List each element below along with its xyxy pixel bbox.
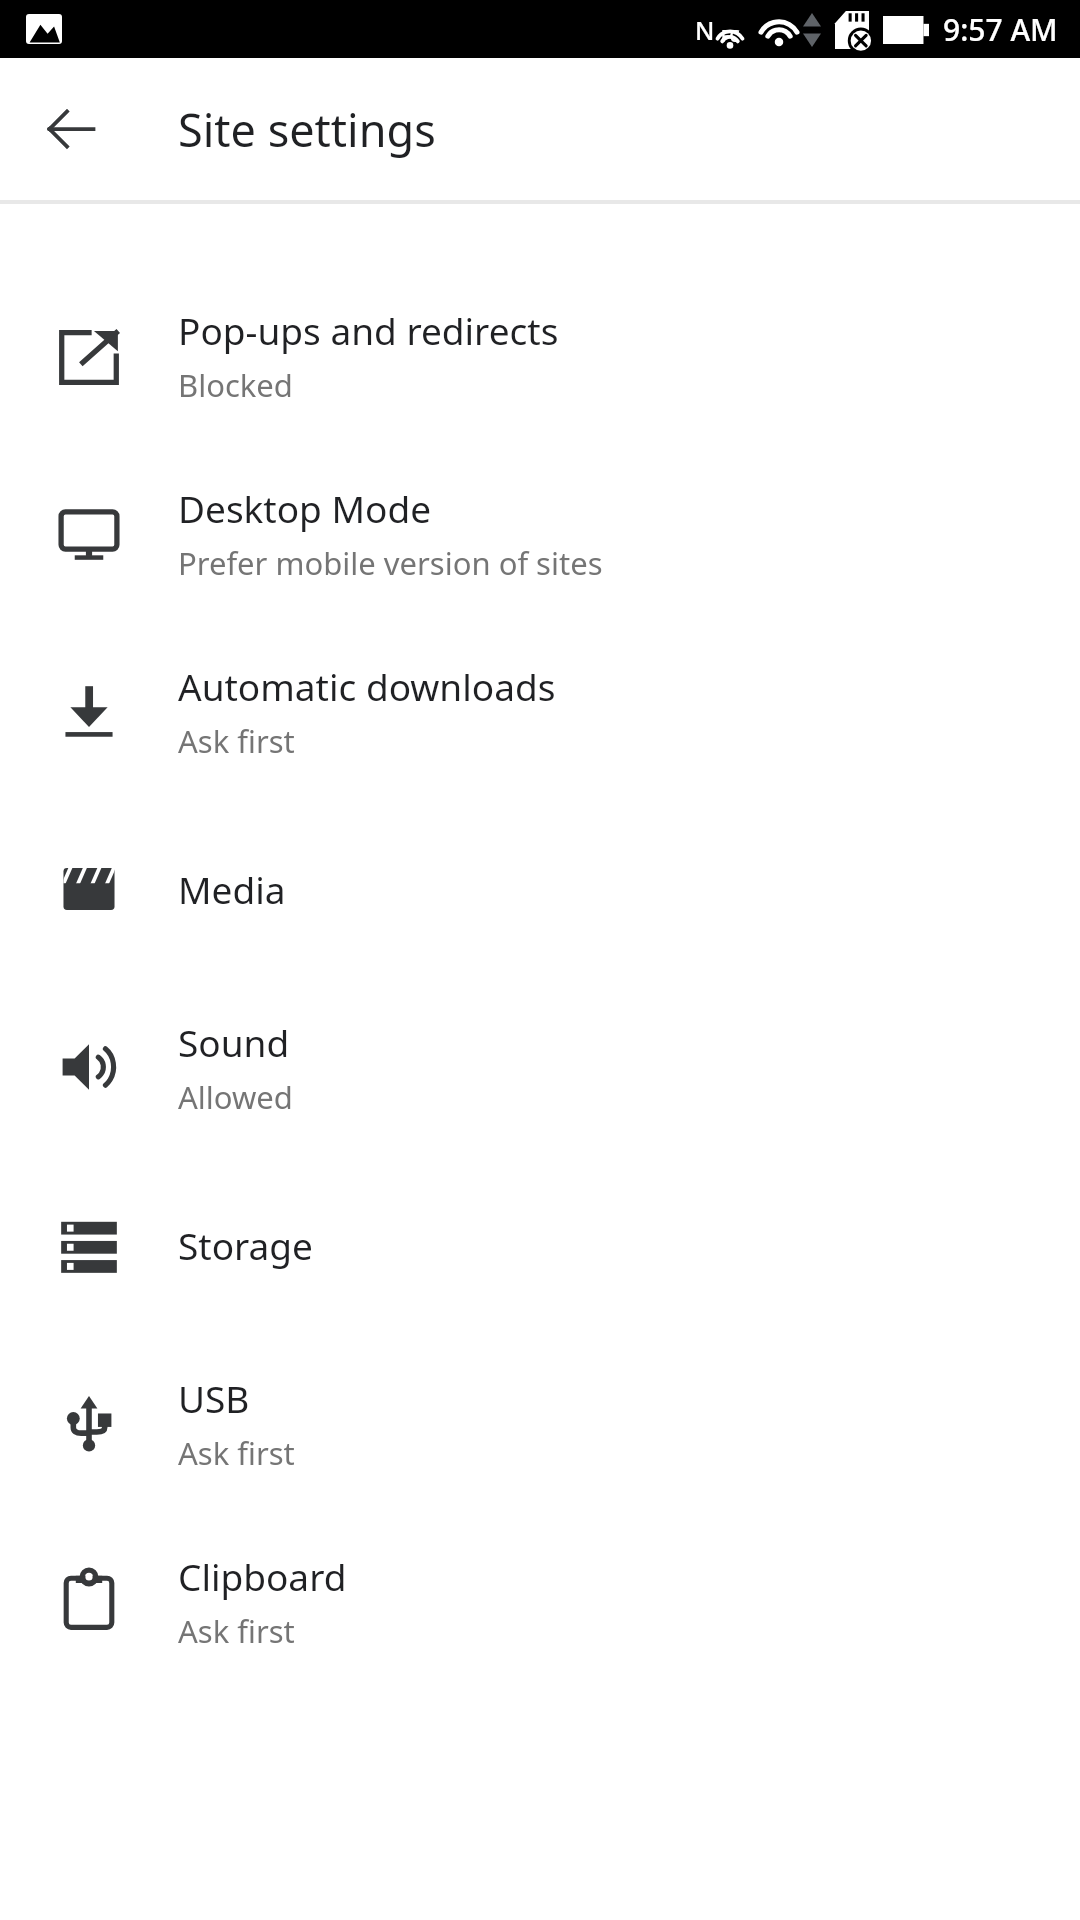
button[interactable]: Desktop Mode bbox=[0, 444, 1080, 622]
staticText: Site settings bbox=[178, 99, 436, 160]
staticText: N bbox=[695, 13, 715, 47]
button[interactable]: Clipboard bbox=[0, 1512, 1080, 1690]
staticText: FC bbox=[721, 25, 740, 47]
staticText: Desktop Mode bbox=[178, 483, 432, 533]
button[interactable]: Automatic downloads bbox=[0, 622, 1080, 800]
staticText: Pop-ups and redirects bbox=[178, 305, 559, 355]
button[interactable]: Storage bbox=[0, 1156, 1080, 1334]
staticText: Automatic downloads bbox=[178, 661, 556, 711]
staticText: 9:57 AM bbox=[943, 9, 1058, 50]
staticText: Ask first bbox=[178, 1610, 295, 1652]
button[interactable]: USB bbox=[0, 1334, 1080, 1512]
button[interactable]: Media bbox=[0, 800, 1080, 978]
staticText: Blocked bbox=[178, 364, 293, 406]
button[interactable]: Sound bbox=[0, 978, 1080, 1156]
staticText: Sound bbox=[178, 1017, 290, 1067]
staticText: Prefer mobile version of sites bbox=[178, 542, 603, 584]
staticText: USB bbox=[178, 1373, 250, 1423]
staticText: Media bbox=[178, 864, 286, 914]
button[interactable]: Pop-ups and redirects bbox=[0, 266, 1080, 444]
staticText: Ask first bbox=[178, 1432, 295, 1474]
staticText: Storage bbox=[178, 1220, 313, 1270]
staticText: Allowed bbox=[178, 1076, 293, 1118]
staticText: Ask first bbox=[178, 720, 295, 762]
button[interactable]: Back bbox=[30, 88, 112, 170]
staticText: Clipboard bbox=[178, 1551, 347, 1601]
